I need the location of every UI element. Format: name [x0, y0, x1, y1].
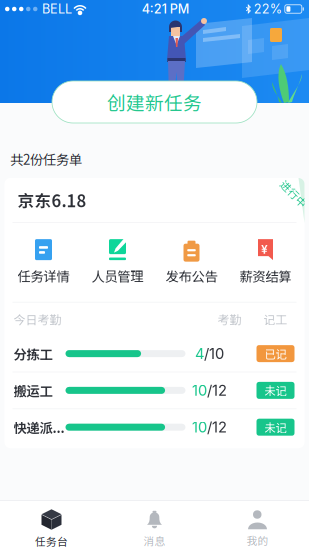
- button[interactable]: 消息: [103, 510, 206, 548]
- staticText: 消息: [143, 533, 165, 548]
- staticText: 22%: [254, 1, 282, 17]
- button[interactable]: ¥: [228, 239, 302, 285]
- staticText: 创建新任务: [107, 88, 202, 115]
- button[interactable]: 人员管理: [80, 239, 154, 285]
- staticText: 记工: [263, 310, 287, 328]
- staticText: 任务台: [35, 533, 68, 549]
- staticText: 4:21 PM: [142, 1, 190, 17]
- button[interactable]: 任务台: [0, 509, 103, 549]
- button[interactable]: 任务详情: [6, 239, 80, 285]
- staticText: /10: [204, 345, 224, 362]
- staticText: 10: [192, 381, 207, 399]
- staticText: 快递派...: [13, 417, 64, 437]
- staticText: ¥: [261, 242, 268, 257]
- staticText: 京东6.18: [17, 188, 86, 212]
- button[interactable]: 我的: [206, 510, 309, 548]
- staticText: 共2份任务单: [10, 149, 82, 169]
- staticText: /12: [207, 418, 227, 436]
- staticText: 任务详情: [17, 266, 69, 285]
- staticText: 未记: [264, 382, 286, 399]
- staticText: 薪资结算: [239, 266, 291, 285]
- button[interactable]: 创建新任务: [52, 81, 257, 123]
- staticText: 未记: [264, 419, 286, 435]
- staticText: BELL: [42, 1, 72, 17]
- staticText: 已记: [264, 345, 286, 362]
- staticText: 10: [192, 418, 207, 436]
- staticText: 今日考勤: [13, 310, 61, 328]
- staticText: 考勤: [217, 310, 241, 328]
- staticText: 进行中: [277, 186, 309, 201]
- staticText: 我的: [246, 532, 268, 548]
- staticText: /12: [207, 381, 227, 399]
- staticText: 人员管理: [91, 266, 143, 285]
- staticText: 4: [195, 345, 204, 362]
- button[interactable]: 发布公告: [154, 239, 228, 285]
- staticText: 发布公告: [165, 266, 217, 285]
- staticText: 搬运工: [13, 381, 52, 400]
- staticText: 分拣工: [13, 344, 52, 363]
